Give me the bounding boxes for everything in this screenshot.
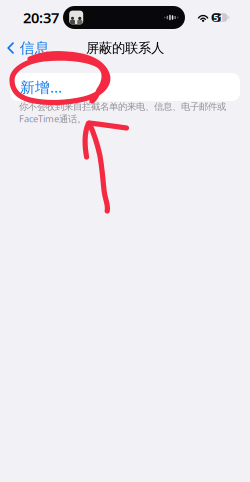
staticText: 51 bbox=[213, 11, 223, 24]
button[interactable]: 新增... bbox=[10, 73, 240, 101]
staticText: 20:37 bbox=[23, 8, 59, 27]
staticText: 新增... bbox=[20, 77, 62, 97]
button[interactable]: 信息 bbox=[0, 35, 56, 61]
staticText: 你不会收到来自拦截名单的来电、信息、电子邮件或 FaceTime通话。 bbox=[19, 101, 226, 125]
staticText: 屏蔽的联系人 bbox=[86, 40, 164, 56]
staticText: 信息 bbox=[20, 39, 50, 57]
